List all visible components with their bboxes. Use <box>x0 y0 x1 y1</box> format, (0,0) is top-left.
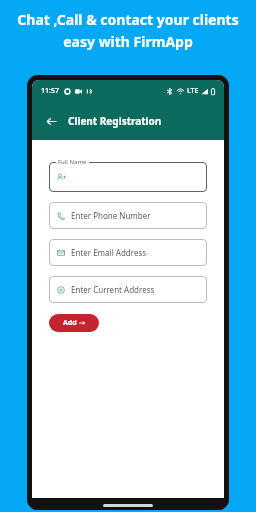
staticText: Enter Email Address <box>71 247 147 258</box>
staticText: LTE <box>187 86 199 96</box>
button[interactable]: Back <box>42 112 60 130</box>
staticText: easy with FirmApp <box>63 32 193 51</box>
staticText: Enter Phone Number <box>71 210 151 221</box>
staticText: Add <box>63 318 77 328</box>
button[interactable]: Enter Email Address <box>49 239 207 266</box>
staticText: Chat ,Call & contact your clients <box>17 10 239 29</box>
button[interactable]: Add <box>49 314 99 332</box>
button[interactable]: Enter Phone Number <box>49 202 207 229</box>
staticText: Full Name <box>58 158 87 166</box>
staticText: 11:57 <box>41 86 59 96</box>
staticText: Enter Current Address <box>71 284 155 295</box>
button[interactable] <box>49 162 207 192</box>
button[interactable]: Enter Current Address <box>49 276 207 303</box>
staticText: Client Registration <box>68 114 162 128</box>
